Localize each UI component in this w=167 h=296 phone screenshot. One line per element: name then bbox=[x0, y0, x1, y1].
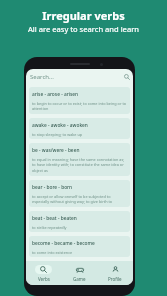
staticText: be - was/were - been bbox=[32, 147, 80, 154]
staticText: to stop sleeping; to wake up bbox=[32, 132, 83, 137]
staticText: arise - arose - arisen bbox=[32, 91, 79, 98]
button[interactable]: be - was/were - been bbox=[29, 143, 130, 176]
button[interactable]: Profile bbox=[97, 261, 133, 285]
staticText: Irregular verbs bbox=[42, 8, 125, 23]
button[interactable]: awake - awoke - awoken bbox=[29, 118, 130, 139]
staticText: to come into existence bbox=[32, 250, 73, 255]
staticText: to begin to occur or to exist; to come i… bbox=[32, 101, 127, 112]
staticText: Search... bbox=[30, 73, 54, 81]
staticText: to strike repeatedly bbox=[32, 225, 67, 230]
staticText: Verbs bbox=[38, 276, 50, 282]
button[interactable]: arise - arose - arisen bbox=[29, 87, 130, 114]
other: Search bbox=[40, 266, 47, 273]
button[interactable]: Search... bbox=[26, 69, 133, 85]
staticText: Profile bbox=[108, 276, 122, 282]
button[interactable]: bear - bore - born bbox=[29, 180, 130, 207]
staticText: bear - bore - born bbox=[32, 184, 73, 191]
staticText: to equal in meaning; have the same conno… bbox=[32, 157, 127, 174]
other: Search bbox=[124, 74, 130, 80]
staticText: beat - beat - beaten bbox=[32, 215, 77, 222]
staticText: to accept or allow oneself to be subject… bbox=[32, 194, 127, 205]
other: Game bbox=[76, 267, 84, 273]
button[interactable]: Game bbox=[61, 261, 97, 285]
staticText: All are easy to search and learn bbox=[28, 24, 139, 34]
staticText: become - became - become bbox=[32, 240, 95, 247]
button[interactable]: beat - beat - beaten bbox=[29, 211, 130, 232]
button[interactable]: Search bbox=[26, 261, 61, 285]
button[interactable]: become - became - become bbox=[29, 236, 130, 257]
staticText: awake - awoke - awoken bbox=[32, 122, 88, 129]
staticText: Game bbox=[73, 276, 86, 282]
